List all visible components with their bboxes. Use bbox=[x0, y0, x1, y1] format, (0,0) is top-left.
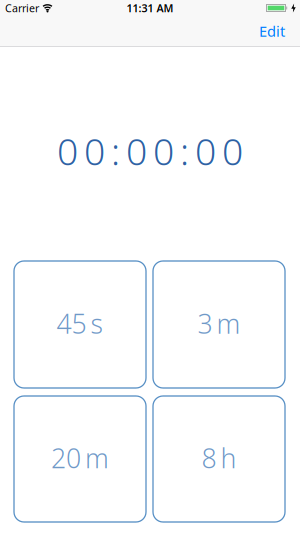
button[interactable]: 45 s bbox=[14, 261, 146, 388]
staticText: 20 m bbox=[51, 440, 109, 476]
button[interactable]: 3 m bbox=[153, 261, 285, 388]
staticText: 3 m bbox=[197, 306, 240, 341]
button[interactable]: 8 h bbox=[153, 396, 285, 522]
staticText: 11:31 AM bbox=[126, 1, 173, 15]
staticText: Edit bbox=[259, 21, 285, 41]
button[interactable]: Edit bbox=[259, 21, 285, 41]
staticText: 45 s bbox=[56, 306, 103, 341]
staticText: 00:00:00 bbox=[57, 126, 243, 176]
staticText: Carrier bbox=[5, 1, 39, 15]
button[interactable]: 20 m bbox=[14, 396, 146, 522]
staticText: 8 h bbox=[201, 440, 236, 476]
